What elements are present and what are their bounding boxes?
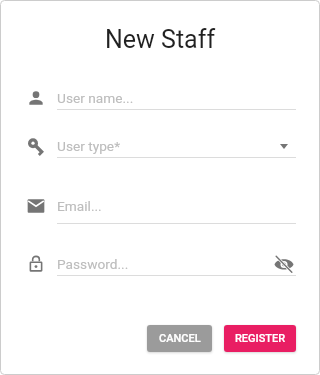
staticText: Email... xyxy=(57,198,102,214)
staticText: User name... xyxy=(57,90,134,106)
staticText: User type* xyxy=(57,138,121,154)
staticText: Password... xyxy=(57,256,129,272)
button[interactable]: CANCEL xyxy=(147,325,212,352)
button[interactable]: Email... xyxy=(57,198,257,214)
staticText: New Staff xyxy=(105,25,216,54)
button[interactable]: Show password xyxy=(274,254,294,274)
staticText: REGISTER xyxy=(235,332,286,345)
button[interactable]: REGISTER xyxy=(224,325,296,352)
button[interactable]: User name... xyxy=(57,90,257,106)
button[interactable]: Password... xyxy=(57,256,257,272)
button[interactable]: User type* xyxy=(57,138,257,154)
staticText: CANCEL xyxy=(159,332,201,345)
button[interactable]: Open user type list xyxy=(280,144,288,149)
